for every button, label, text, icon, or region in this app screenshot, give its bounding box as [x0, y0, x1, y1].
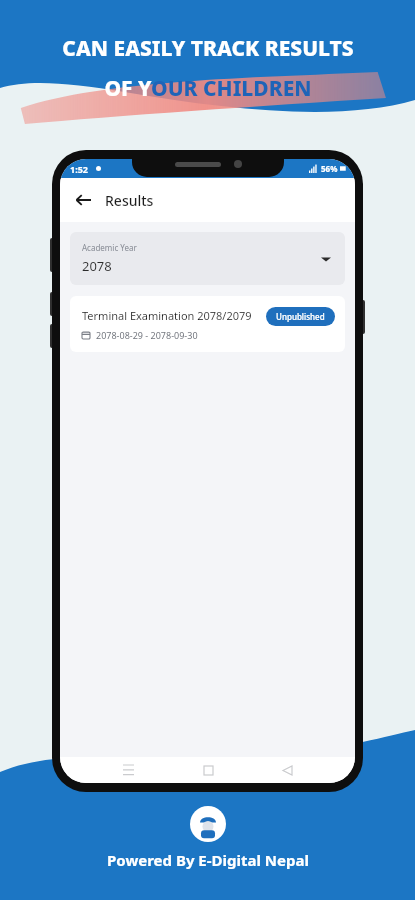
staticText: Results	[105, 191, 154, 210]
staticText: Powered By E-Digital Nepal	[107, 850, 309, 870]
button[interactable]: Academic Year	[70, 232, 345, 285]
staticText: CAN EASILY TRACK RESULTS	[62, 34, 354, 63]
staticText: 2078	[82, 257, 112, 275]
staticText: 56%	[321, 163, 338, 174]
button[interactable]: Back	[275, 758, 299, 782]
button[interactable]: Unpublished	[266, 307, 335, 326]
button[interactable]: Home	[196, 758, 220, 782]
staticText: Terminal Examination 2078/2079	[82, 308, 252, 323]
staticText: Unpublished	[276, 311, 325, 322]
button[interactable]: Back	[68, 185, 98, 215]
staticText: Academic Year	[82, 242, 137, 253]
staticText: 1:52	[70, 163, 88, 175]
staticText: OF YOUR CHILDREN	[104, 74, 312, 103]
button[interactable]: Recents	[116, 758, 140, 782]
button[interactable]: Terminal Examination 2078/2079	[70, 296, 345, 352]
staticText: 2078-08-29 - 2078-09-30	[96, 329, 198, 341]
